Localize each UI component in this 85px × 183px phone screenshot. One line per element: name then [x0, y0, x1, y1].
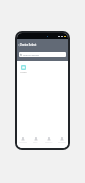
- button[interactable]: Search device: [19, 52, 66, 57]
- button[interactable]: [21, 65, 26, 70]
- button[interactable]: Account: [17, 135, 29, 148]
- button[interactable]: Back: [17, 43, 20, 46]
- staticText: Folder: [19, 71, 28, 74]
- button[interactable]: Files: [29, 135, 42, 148]
- staticText: Device Select: [20, 43, 37, 47]
- staticText: Search device: [23, 53, 39, 56]
- staticText: Devices: [45, 141, 53, 144]
- staticText: Account: [19, 141, 27, 144]
- staticText: Settings: [58, 141, 66, 144]
- button[interactable]: Settings: [55, 135, 68, 148]
- staticText: Files: [33, 141, 38, 144]
- button[interactable]: Devices: [42, 135, 55, 148]
